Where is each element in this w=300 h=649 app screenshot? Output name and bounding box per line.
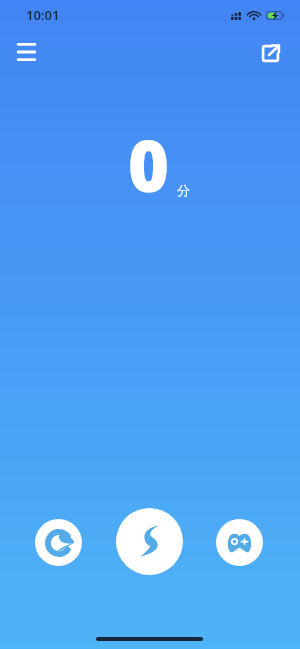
button[interactable]: Games — [216, 519, 263, 566]
staticText: 10:01 — [26, 6, 60, 24]
button[interactable]: Boost — [116, 508, 183, 575]
button[interactable]: Share — [252, 37, 289, 69]
staticText: 0 — [128, 117, 170, 212]
button[interactable]: Accelerate — [35, 519, 82, 566]
staticText: 分 — [177, 182, 190, 198]
button[interactable]: Menu — [8, 36, 45, 68]
